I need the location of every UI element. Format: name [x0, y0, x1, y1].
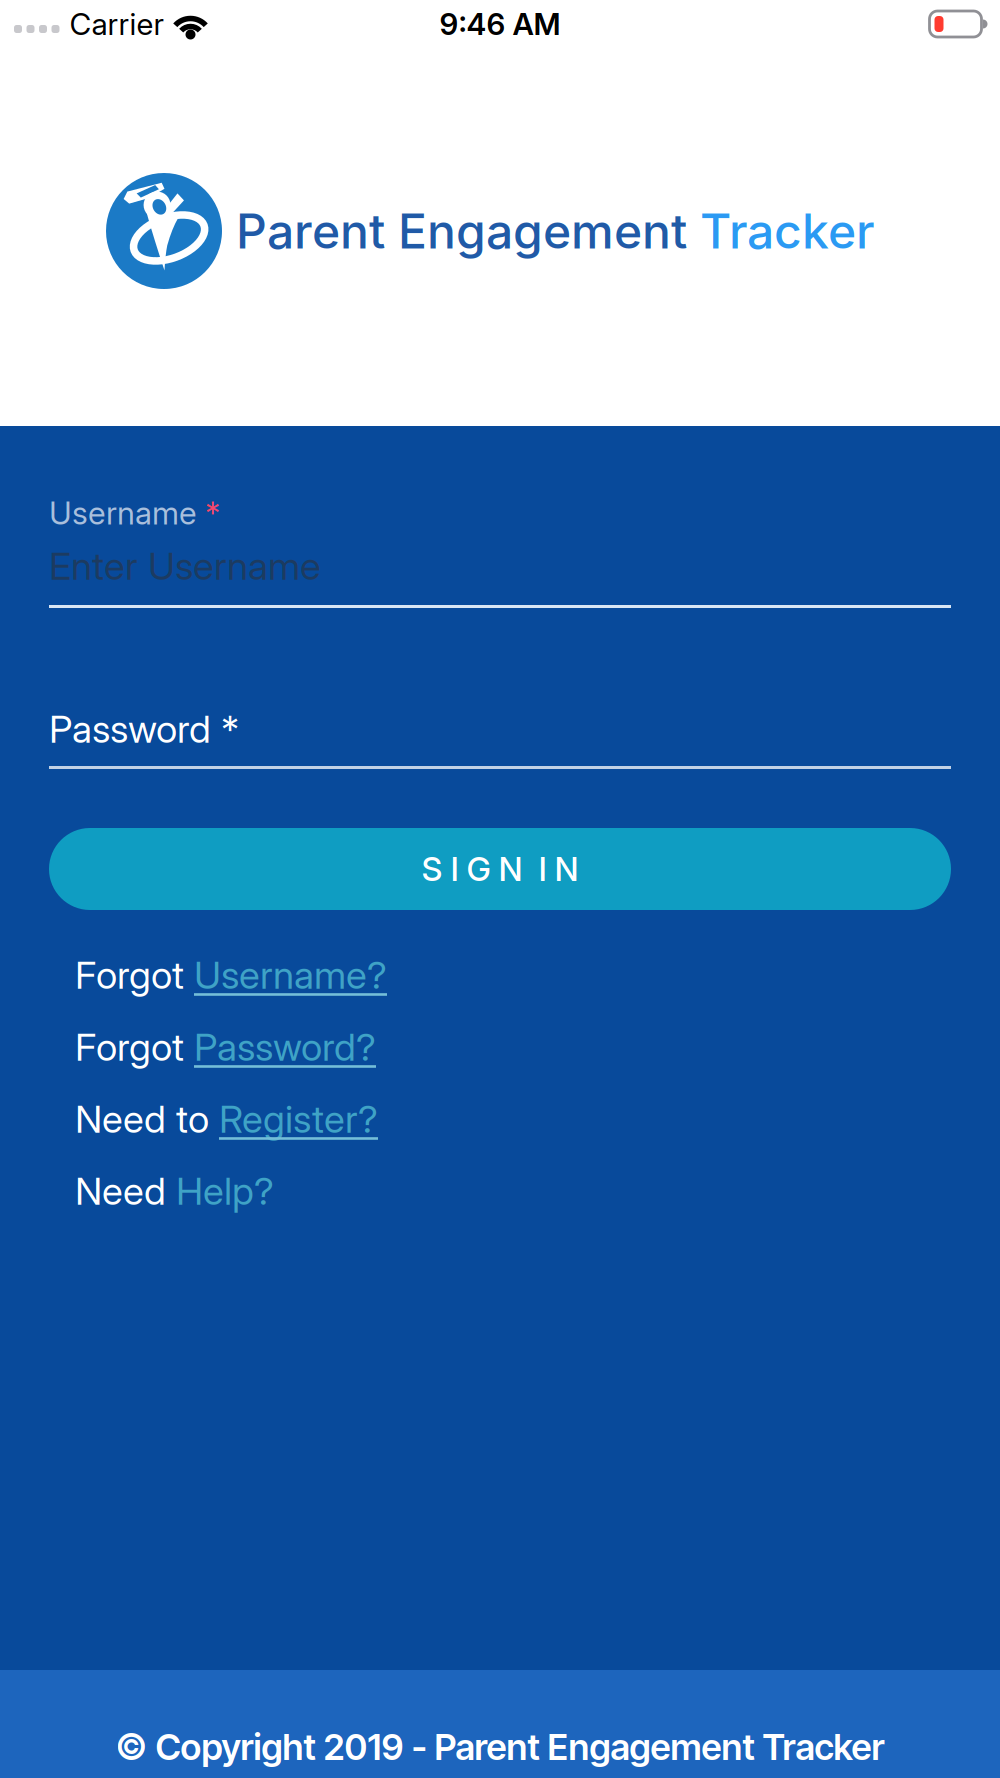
staticText: Password *: [49, 706, 239, 752]
staticText: Username: [49, 494, 197, 532]
staticText: *: [205, 494, 220, 532]
button[interactable]: Username: [49, 538, 951, 608]
staticText: Parent Engagement: [236, 202, 700, 260]
button[interactable]: Password: [49, 701, 951, 769]
staticText: S I G N I N: [421, 849, 578, 889]
button[interactable]: Need: [75, 1155, 274, 1227]
button[interactable]: Need to: [75, 1083, 378, 1155]
staticText: © Copyright 2019 - Parent Engagement Tra…: [115, 1725, 884, 1769]
button[interactable]: Forgot: [75, 939, 387, 1011]
staticText: Password?: [194, 1024, 376, 1070]
staticText: Forgot: [75, 952, 194, 998]
staticText: Forgot: [75, 1024, 194, 1070]
staticText: Carrier: [69, 6, 164, 42]
staticText: Need to: [75, 1096, 219, 1142]
staticText: Help?: [176, 1168, 274, 1214]
staticText: Enter Username: [49, 543, 321, 589]
button[interactable]: Forgot: [75, 1011, 376, 1083]
staticText: Need: [75, 1168, 176, 1214]
staticText: 9:46 AM: [439, 6, 560, 42]
button[interactable]: S I G N I N: [49, 828, 951, 910]
staticText: Tracker: [700, 202, 875, 260]
staticText: Username?: [194, 952, 387, 998]
staticText: Register?: [219, 1096, 378, 1142]
